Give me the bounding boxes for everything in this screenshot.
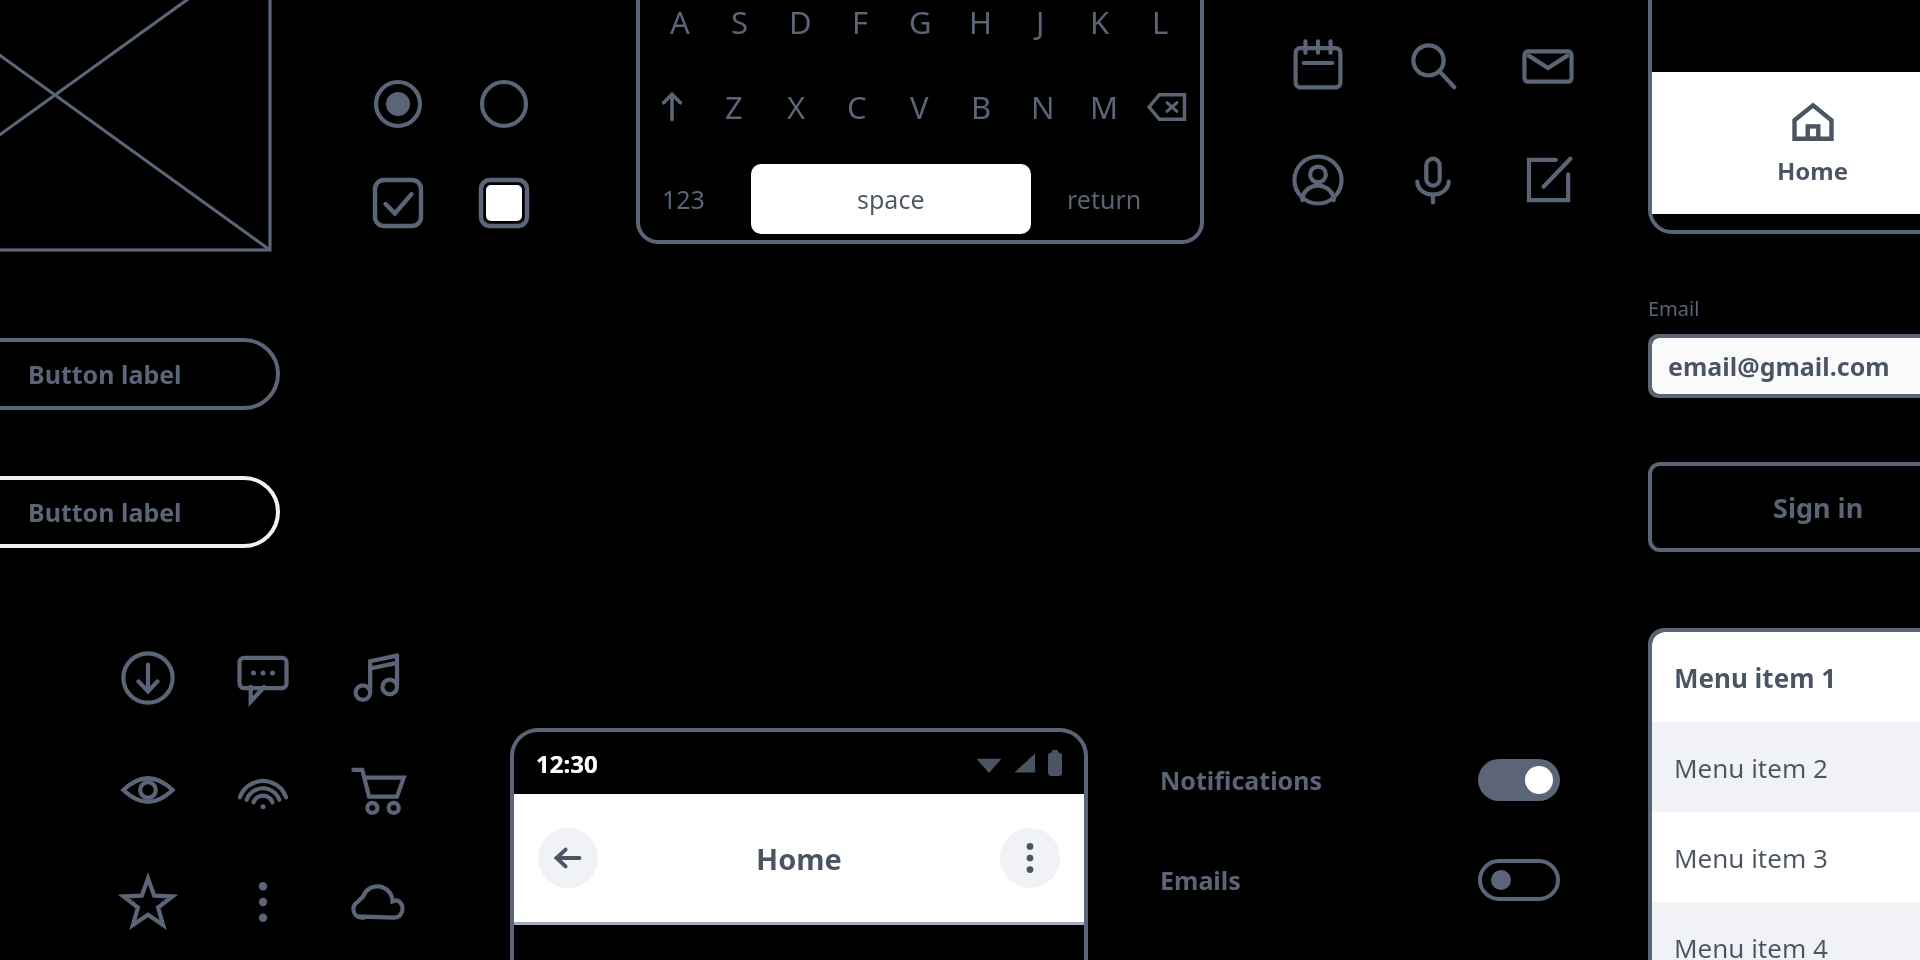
button[interactable]: H: [958, 0, 1002, 44]
button[interactable]: M: [1082, 85, 1126, 129]
staticText: Menu item 2: [1674, 750, 1828, 785]
button[interactable]: X: [774, 85, 818, 129]
staticText: Emails: [1160, 863, 1241, 897]
button[interactable]: Music: [350, 650, 406, 706]
staticText: F: [852, 1, 869, 43]
button[interactable]: S: [718, 0, 762, 44]
button[interactable]: Menu item 1: [1652, 632, 1920, 722]
button[interactable]: Shift: [650, 85, 694, 129]
button[interactable]: Search: [1405, 38, 1461, 94]
button[interactable]: V: [897, 85, 941, 129]
button[interactable]: [372, 78, 424, 130]
staticText: Button label: [28, 357, 182, 391]
button[interactable]: Microphone: [1405, 152, 1461, 208]
button[interactable]: Compose: [1520, 152, 1576, 208]
button[interactable]: [478, 177, 530, 229]
button[interactable]: D: [778, 0, 822, 44]
button[interactable]: F: [838, 0, 882, 44]
button[interactable]: B: [959, 85, 1003, 129]
button[interactable]: G: [898, 0, 942, 44]
button[interactable]: Sign in: [1648, 462, 1920, 552]
button[interactable]: Home: [1652, 72, 1920, 214]
button[interactable]: A: [658, 0, 702, 44]
staticText: 12:30: [536, 747, 598, 780]
button[interactable]: Wifi: [235, 762, 291, 818]
button[interactable]: Button label: [0, 338, 280, 410]
button[interactable]: N: [1021, 85, 1065, 129]
staticText: V: [910, 86, 929, 128]
button[interactable]: Menu item 2: [1652, 722, 1920, 812]
staticText: N: [1031, 86, 1055, 128]
button[interactable]: [478, 78, 530, 130]
button[interactable]: Visibility: [120, 762, 176, 818]
button[interactable]: More options: [1000, 828, 1060, 888]
staticText: Button label: [28, 495, 182, 529]
button[interactable]: L: [1138, 0, 1182, 44]
button[interactable]: C: [835, 85, 879, 129]
button[interactable]: Menu item 4: [1652, 902, 1920, 960]
button[interactable]: return: [1063, 178, 1146, 220]
staticText: Home: [756, 839, 842, 878]
staticText: Menu item 1: [1674, 660, 1837, 695]
button[interactable]: Messages: [235, 650, 291, 706]
button[interactable]: [372, 177, 424, 229]
button[interactable]: More options: [235, 874, 291, 930]
button[interactable]: Download: [120, 650, 176, 706]
staticText: X: [787, 86, 806, 128]
staticText: C: [847, 86, 867, 128]
staticText: Home: [1777, 154, 1849, 187]
button[interactable]: space: [751, 164, 1031, 234]
staticText: K: [1090, 1, 1110, 43]
button[interactable]: Cloud: [350, 874, 406, 930]
button[interactable]: Calendar: [1290, 38, 1346, 94]
button[interactable]: Cart: [350, 762, 406, 818]
staticText: D: [789, 1, 812, 43]
button[interactable]: email@gmail.com: [1652, 338, 1920, 394]
button[interactable]: Notifications: [1160, 752, 1560, 808]
staticText: Notifications: [1160, 763, 1323, 797]
staticText: H: [969, 1, 992, 43]
button[interactable]: Emails: [1160, 852, 1560, 908]
button[interactable]: Profile: [1290, 152, 1346, 208]
button[interactable]: Menu item 3: [1652, 812, 1920, 902]
button[interactable]: J: [1018, 0, 1062, 44]
staticText: space: [857, 182, 925, 216]
staticText: Menu item 4: [1674, 930, 1828, 960]
staticText: S: [731, 1, 749, 43]
staticText: B: [971, 86, 992, 128]
button[interactable]: K: [1078, 0, 1122, 44]
staticText: email@gmail.com: [1668, 349, 1890, 383]
button[interactable]: Favorite: [120, 874, 176, 930]
staticText: Sign in: [1773, 489, 1864, 526]
staticText: A: [670, 1, 690, 43]
staticText: M: [1090, 86, 1119, 128]
staticText: Email: [1648, 295, 1700, 322]
button[interactable]: Back: [538, 828, 598, 888]
staticText: L: [1152, 1, 1169, 43]
button[interactable]: Button label: [0, 476, 280, 548]
button[interactable]: Z: [712, 85, 756, 129]
staticText: J: [1036, 1, 1045, 43]
staticText: return: [1067, 182, 1142, 216]
staticText: G: [909, 1, 932, 43]
staticText: 123: [662, 182, 705, 216]
staticText: Menu item 3: [1674, 840, 1828, 875]
button[interactable]: Mail: [1520, 38, 1576, 94]
button[interactable]: Backspace: [1144, 84, 1190, 130]
staticText: Z: [725, 86, 743, 128]
button[interactable]: 123: [658, 178, 709, 220]
